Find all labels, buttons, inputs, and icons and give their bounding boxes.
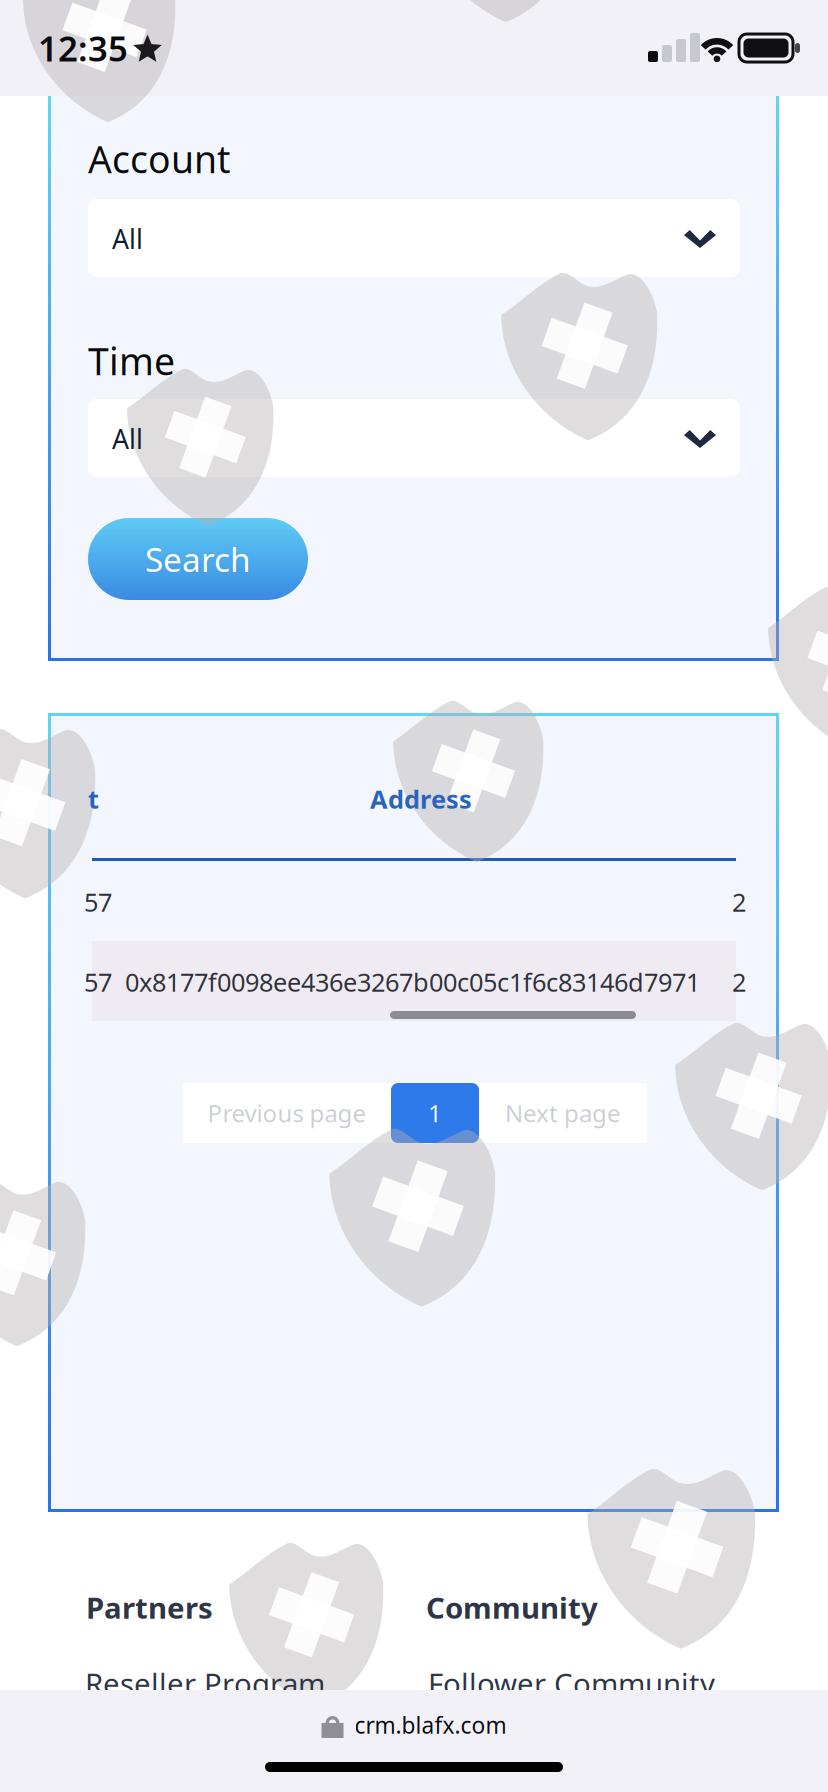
staticText: 57	[84, 965, 112, 999]
staticText: 0x8177f0098ee436e3267b00c05c1f6c83146d79…	[125, 965, 700, 999]
staticText: Address	[370, 782, 472, 816]
staticText: Account	[88, 134, 230, 184]
staticText: All	[112, 221, 143, 256]
button[interactable]: All	[88, 199, 740, 277]
staticText: Partners	[86, 1588, 213, 1627]
button[interactable]: All	[88, 399, 740, 477]
staticText: Reseller Program	[85, 1664, 325, 1703]
staticText: Follower Community	[428, 1664, 715, 1703]
button[interactable]: Next page	[479, 1083, 647, 1143]
staticText: 12:35	[38, 25, 128, 71]
staticText: crm.blafx.com	[354, 1710, 506, 1740]
button[interactable]: crm.blafx.com	[0, 1700, 828, 1750]
staticText: 2	[732, 885, 746, 919]
staticText: Search	[145, 537, 251, 581]
staticText: Community	[426, 1588, 598, 1627]
staticText: 1	[428, 1097, 442, 1129]
button[interactable]: Reseller Program	[85, 1664, 325, 1703]
button[interactable]: Previous page	[183, 1083, 391, 1143]
staticText: 2	[732, 965, 746, 999]
staticText: t	[88, 782, 99, 816]
button[interactable]: 1	[391, 1083, 479, 1143]
staticText: All	[112, 421, 143, 456]
staticText: Time	[88, 336, 175, 386]
staticText: Next page	[505, 1097, 621, 1129]
staticText: Previous page	[207, 1097, 366, 1129]
staticText: 57	[84, 885, 112, 919]
button[interactable]: Search	[88, 518, 308, 600]
button[interactable]: Follower Community	[428, 1664, 715, 1703]
